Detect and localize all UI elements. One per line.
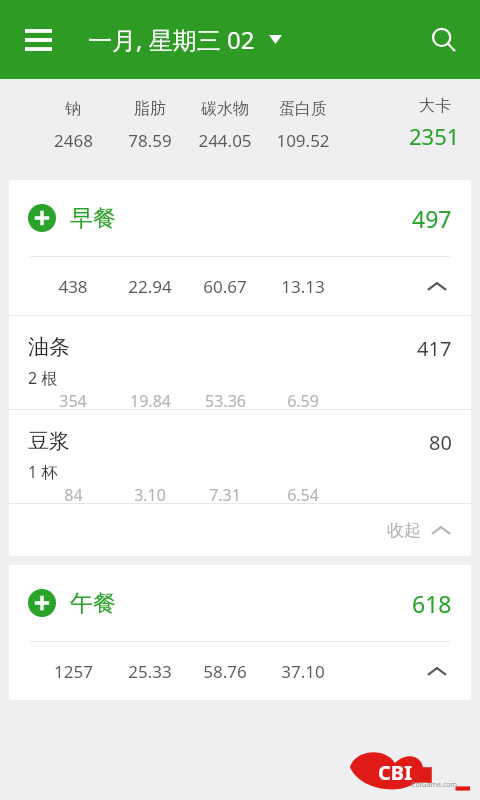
button[interactable]: 收起: [9, 504, 471, 556]
staticText: 25.33: [128, 660, 172, 683]
button[interactable]: 午餐: [9, 565, 471, 641]
staticText: 6.59: [287, 390, 319, 412]
staticText: 1 杯: [28, 461, 58, 483]
button[interactable]: 1257: [9, 642, 471, 700]
staticText: 618: [412, 588, 452, 619]
staticText: 37.10: [281, 660, 325, 683]
other: Collapse: [417, 651, 457, 691]
staticText: CbiGame.com: [411, 780, 458, 790]
staticText: 417: [417, 335, 452, 362]
staticText: 60.67: [203, 275, 247, 298]
button[interactable]: Menu: [14, 16, 62, 64]
staticText: 油条: [28, 334, 70, 360]
staticText: 2351: [409, 121, 460, 151]
other: Collapse: [417, 266, 457, 306]
staticText: 一月, 星期三 02: [88, 23, 255, 56]
staticText: 大卡: [419, 96, 451, 116]
staticText: 碳水物: [201, 99, 249, 119]
staticText: 109.52: [276, 129, 330, 152]
staticText: 早餐: [70, 204, 116, 233]
staticText: 1257: [54, 660, 93, 683]
staticText: 豆浆: [28, 428, 70, 454]
button[interactable]: 油条: [9, 316, 471, 409]
staticText: 22.94: [128, 275, 172, 298]
button[interactable]: Search: [420, 16, 468, 64]
staticText: 497: [412, 203, 452, 234]
button[interactable]: 一月, 星期三 02: [84, 17, 286, 62]
staticText: 84: [64, 484, 83, 506]
button[interactable]: 早餐: [9, 180, 471, 256]
staticText: 午餐: [70, 589, 116, 618]
staticText: CBI: [378, 759, 412, 786]
button[interactable]: 豆浆: [9, 410, 471, 503]
staticText: 19.84: [130, 390, 171, 412]
staticText: 78.59: [128, 129, 172, 152]
staticText: 收起: [387, 520, 421, 541]
staticText: 58.76: [203, 660, 247, 683]
staticText: 53.36: [205, 390, 246, 412]
staticText: 354: [59, 390, 87, 412]
staticText: 3.10: [134, 484, 166, 506]
staticText: 13.13: [281, 275, 325, 298]
staticText: 钠: [65, 99, 81, 119]
staticText: 6.54: [287, 484, 319, 506]
staticText: 438: [58, 275, 88, 298]
staticText: 244.05: [198, 129, 252, 152]
staticText: 2468: [54, 129, 93, 152]
staticText: 80: [429, 429, 452, 456]
staticText: 脂肪: [134, 99, 166, 119]
staticText: 2 根: [28, 367, 58, 389]
button[interactable]: 438: [9, 257, 471, 315]
staticText: 7.31: [209, 484, 241, 506]
staticText: 蛋白质: [279, 99, 327, 119]
